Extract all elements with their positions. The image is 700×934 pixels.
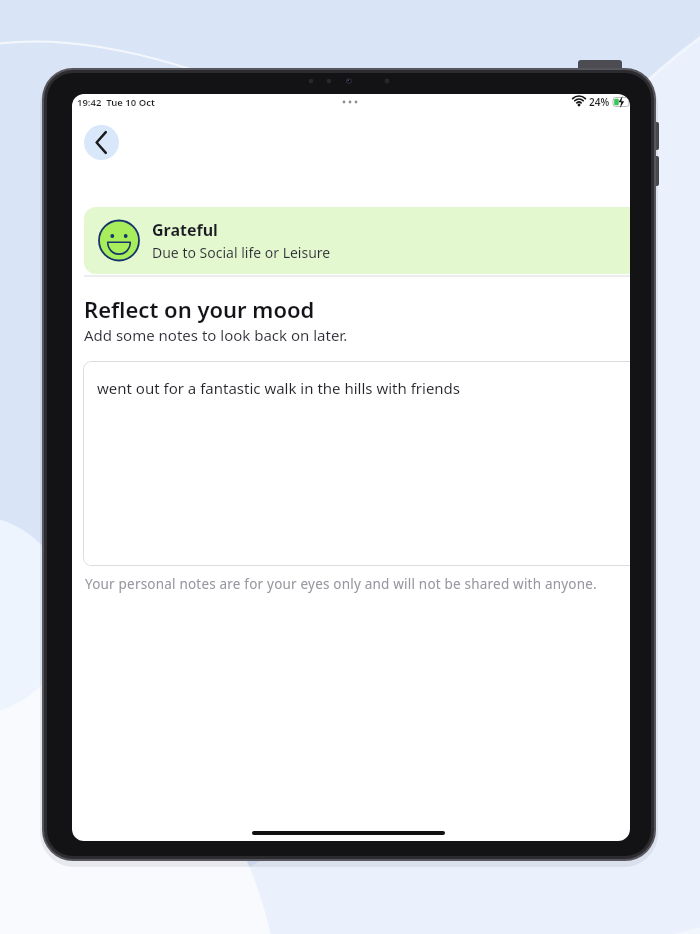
button[interactable] xyxy=(84,125,119,160)
button[interactable]: went out for a fantastic walk in the hil… xyxy=(83,361,630,566)
staticText: Grateful xyxy=(152,219,218,241)
staticText: Due to Social life or Leisure xyxy=(152,243,331,262)
button[interactable]: Grateful xyxy=(84,207,630,274)
staticText: went out for a fantastic walk in the hil… xyxy=(97,378,461,398)
staticText: 24% xyxy=(589,95,610,109)
staticText: Your personal notes are for your eyes on… xyxy=(85,575,597,593)
staticText: Add some notes to look back on later. xyxy=(84,325,348,345)
staticText: 19:42 Tue 10 Oct xyxy=(77,96,155,109)
staticText: Reflect on your mood xyxy=(84,294,315,324)
